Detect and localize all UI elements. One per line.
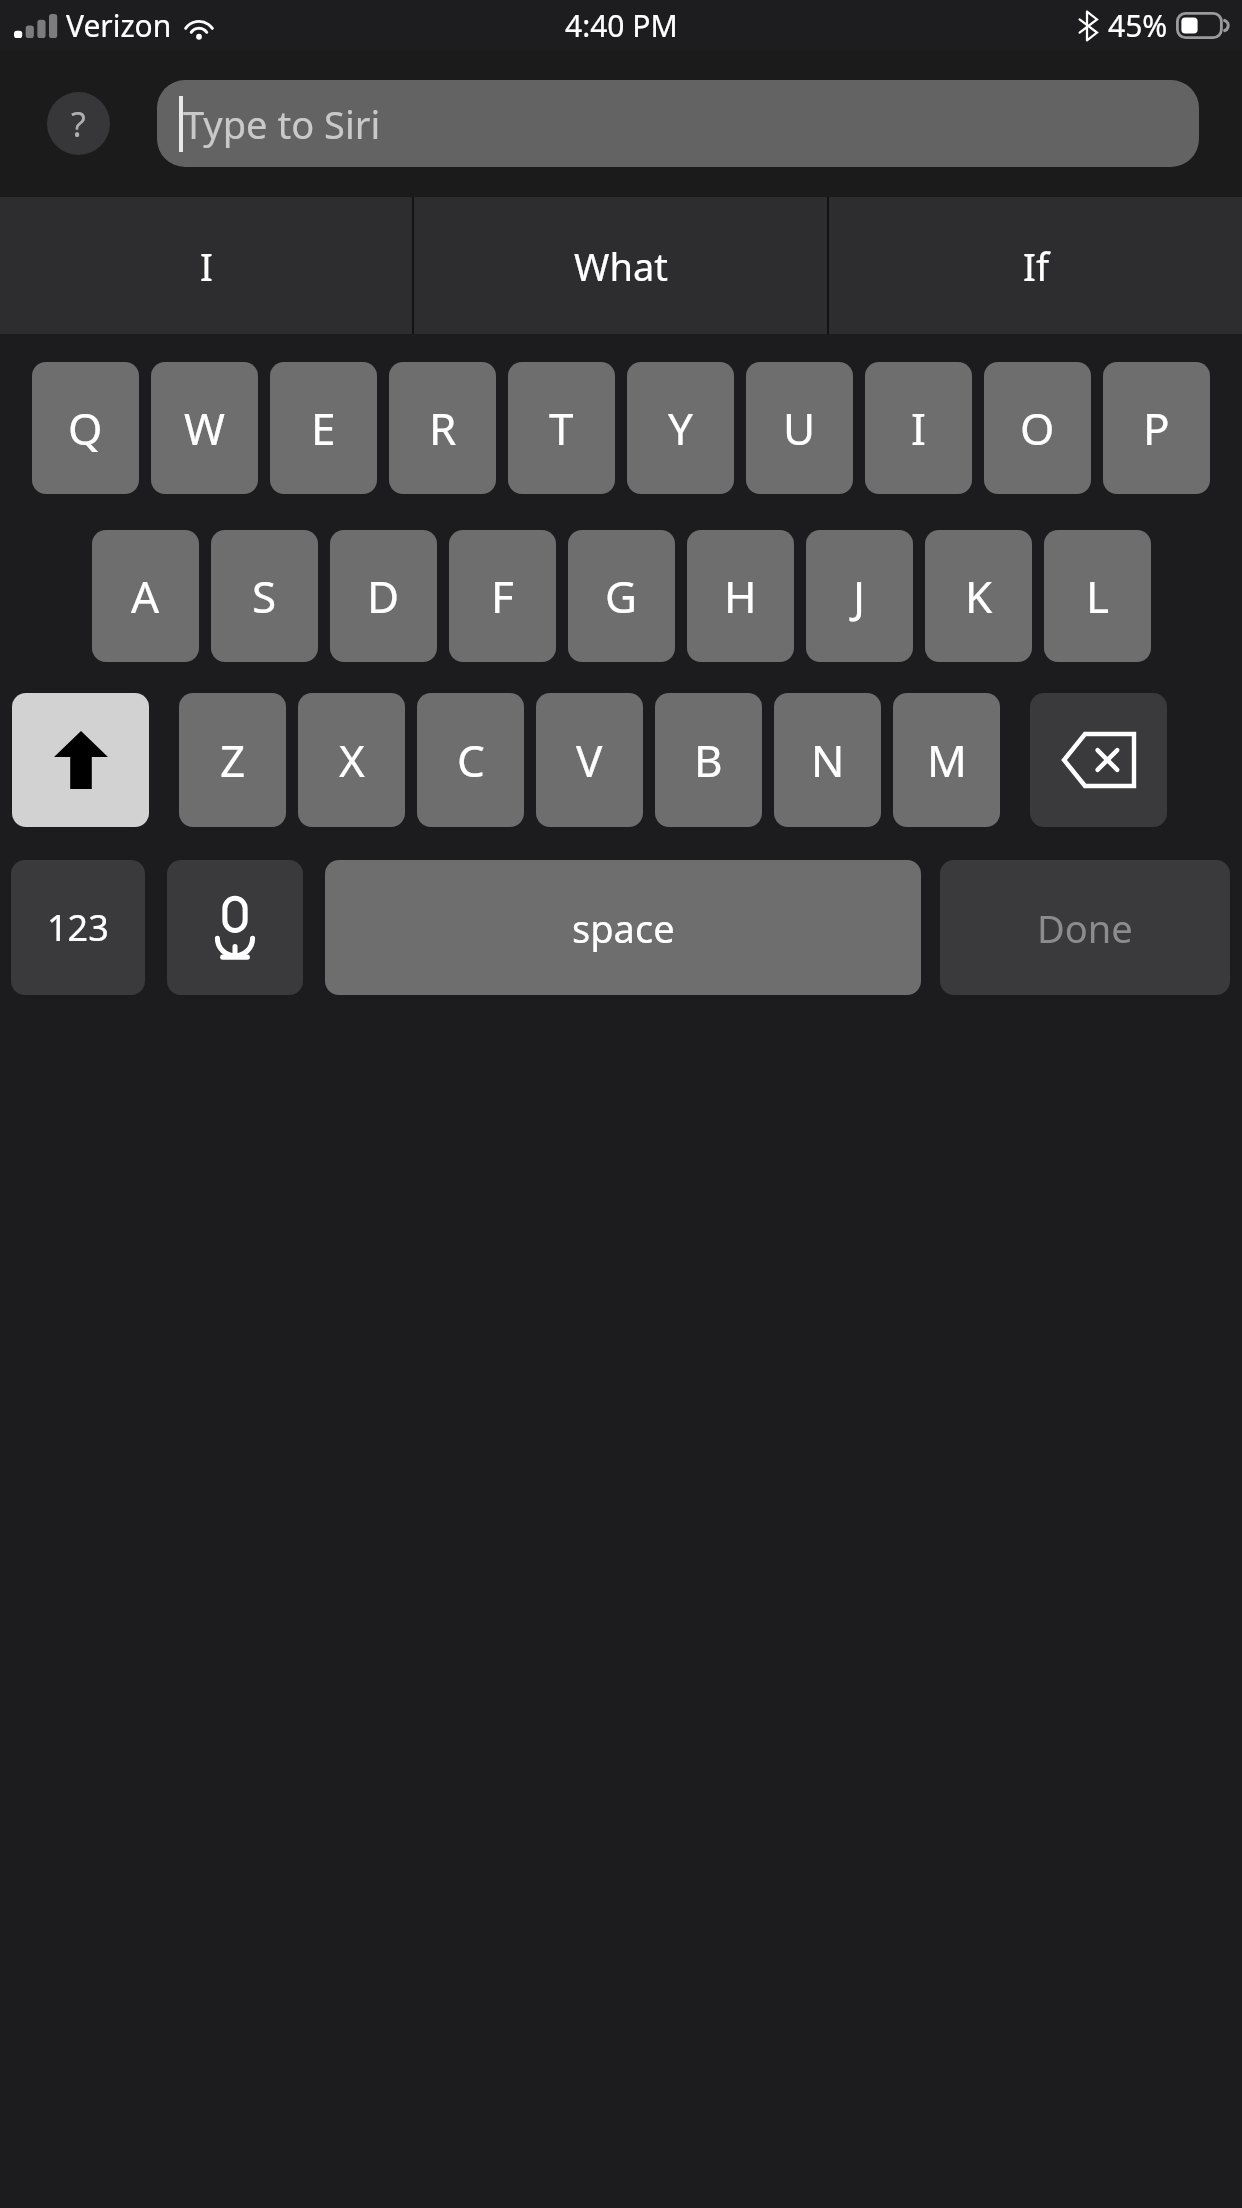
button[interactable]: Backspace bbox=[1030, 693, 1167, 827]
button[interactable]: K bbox=[925, 530, 1032, 662]
staticText: 123 bbox=[47, 903, 109, 952]
button[interactable]: F bbox=[449, 530, 556, 662]
staticText: W bbox=[184, 398, 225, 458]
staticText: Verizon bbox=[66, 5, 172, 46]
button[interactable]: T bbox=[508, 362, 615, 494]
button[interactable]: I bbox=[0, 197, 412, 334]
button[interactable]: R bbox=[389, 362, 496, 494]
button[interactable]: P bbox=[1103, 362, 1210, 494]
staticText: F bbox=[491, 566, 514, 626]
staticText: M bbox=[927, 730, 967, 790]
staticText: O bbox=[1020, 398, 1055, 458]
staticText: A bbox=[131, 566, 160, 626]
button[interactable]: B bbox=[655, 693, 762, 827]
staticText: space bbox=[572, 902, 675, 954]
staticText: ? bbox=[71, 101, 86, 147]
button[interactable]: space bbox=[325, 860, 921, 995]
staticText: K bbox=[965, 566, 993, 626]
button[interactable]: X bbox=[298, 693, 405, 827]
staticText: S bbox=[252, 566, 277, 626]
staticText: H bbox=[724, 566, 757, 626]
staticText: X bbox=[339, 730, 365, 790]
button[interactable]: D bbox=[330, 530, 437, 662]
button[interactable]: Shift bbox=[12, 693, 149, 827]
staticText: 4:40 PM bbox=[565, 5, 678, 46]
staticText: G bbox=[605, 566, 638, 626]
button[interactable]: Dictate bbox=[167, 860, 303, 995]
staticText: U bbox=[783, 398, 816, 458]
staticText: Done bbox=[1037, 902, 1133, 954]
button[interactable]: What bbox=[414, 197, 827, 334]
staticText: J bbox=[853, 566, 866, 626]
button[interactable]: Siri help bbox=[47, 92, 110, 155]
button[interactable]: N bbox=[774, 693, 881, 827]
button[interactable]: W bbox=[151, 362, 258, 494]
staticText: L bbox=[1086, 566, 1110, 626]
staticText: P bbox=[1143, 398, 1170, 458]
button[interactable]: C bbox=[417, 693, 524, 827]
button[interactable]: I bbox=[865, 362, 972, 494]
staticText: If bbox=[1023, 240, 1049, 292]
staticText: Type to Siri bbox=[183, 98, 381, 150]
staticText: I bbox=[911, 398, 926, 458]
button[interactable]: L bbox=[1044, 530, 1151, 662]
button[interactable]: If bbox=[829, 197, 1242, 334]
button[interactable]: U bbox=[746, 362, 853, 494]
staticText: R bbox=[429, 398, 457, 458]
staticText: 45% bbox=[1108, 5, 1168, 46]
button[interactable]: A bbox=[92, 530, 199, 662]
staticText: Z bbox=[220, 730, 246, 790]
button[interactable]: H bbox=[687, 530, 794, 662]
staticText: Y bbox=[668, 398, 693, 458]
button[interactable]: O bbox=[984, 362, 1091, 494]
button[interactable]: Z bbox=[179, 693, 286, 827]
button[interactable]: M bbox=[893, 693, 1000, 827]
staticText: V bbox=[576, 730, 603, 790]
button[interactable]: Done bbox=[940, 860, 1230, 995]
button[interactable]: Y bbox=[627, 362, 734, 494]
staticText: D bbox=[367, 566, 400, 626]
staticText: T bbox=[549, 398, 574, 458]
staticText: N bbox=[811, 730, 845, 790]
staticText: C bbox=[457, 730, 485, 790]
staticText: Q bbox=[68, 398, 103, 458]
button[interactable]: J bbox=[806, 530, 913, 662]
button[interactable]: V bbox=[536, 693, 643, 827]
staticText: E bbox=[311, 398, 336, 458]
button[interactable]: Q bbox=[32, 362, 139, 494]
button[interactable]: G bbox=[568, 530, 675, 662]
button[interactable]: 123 bbox=[11, 860, 145, 995]
button[interactable]: E bbox=[270, 362, 377, 494]
button[interactable]: S bbox=[211, 530, 318, 662]
button[interactable]: Type to Siri bbox=[157, 80, 1199, 167]
staticText: I bbox=[200, 240, 213, 292]
staticText: B bbox=[694, 730, 723, 790]
staticText: What bbox=[574, 240, 668, 292]
